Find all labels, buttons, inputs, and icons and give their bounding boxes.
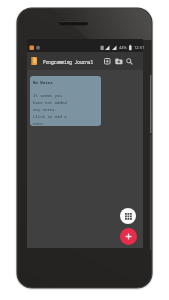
button[interactable] [104, 58, 111, 65]
button[interactable] [31, 57, 37, 65]
button[interactable] [115, 58, 123, 65]
button[interactable] [120, 228, 137, 245]
staticText: 12:51 [134, 45, 145, 50]
button[interactable] [126, 58, 133, 65]
staticText: It seems you have not added any notes. C… [33, 93, 67, 126]
button[interactable]: No Notes [30, 76, 101, 126]
staticText: 44% [119, 45, 127, 50]
button[interactable] [120, 208, 136, 224]
staticText: Programming Journal [43, 59, 94, 65]
staticText: No Notes [33, 80, 53, 86]
